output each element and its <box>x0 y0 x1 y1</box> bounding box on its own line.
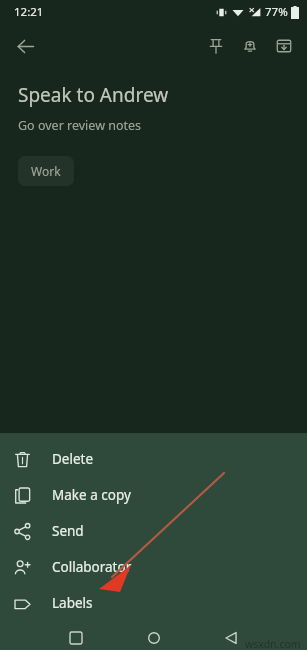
button[interactable]: Recents <box>60 625 92 650</box>
button[interactable]: Home <box>138 625 170 650</box>
button[interactable]: Make a copy <box>0 477 307 513</box>
staticText: Go over review notes <box>18 117 142 134</box>
button[interactable]: Work <box>18 156 74 186</box>
staticText: 77% <box>265 4 288 20</box>
button[interactable]: Back <box>8 29 42 63</box>
staticText: wsxdn.com <box>245 637 301 650</box>
button[interactable]: Back <box>215 625 247 650</box>
button[interactable]: Archive <box>267 29 301 63</box>
staticText: Delete <box>52 450 94 468</box>
button[interactable]: Delete <box>0 441 307 477</box>
staticText: Collaborator <box>52 558 132 576</box>
staticText: Labels <box>52 594 93 612</box>
button[interactable]: Reminder <box>233 29 267 63</box>
staticText: Send <box>52 522 84 540</box>
button[interactable]: Send <box>0 513 307 549</box>
button[interactable]: Collaborator <box>0 549 307 585</box>
staticText: Work <box>31 163 61 179</box>
staticText: Make a copy <box>52 486 131 504</box>
staticText: Speak to Andrew <box>18 82 169 108</box>
button[interactable]: Labels <box>0 585 307 621</box>
button[interactable]: Pin <box>199 29 233 63</box>
staticText: 12:21 <box>14 4 44 20</box>
